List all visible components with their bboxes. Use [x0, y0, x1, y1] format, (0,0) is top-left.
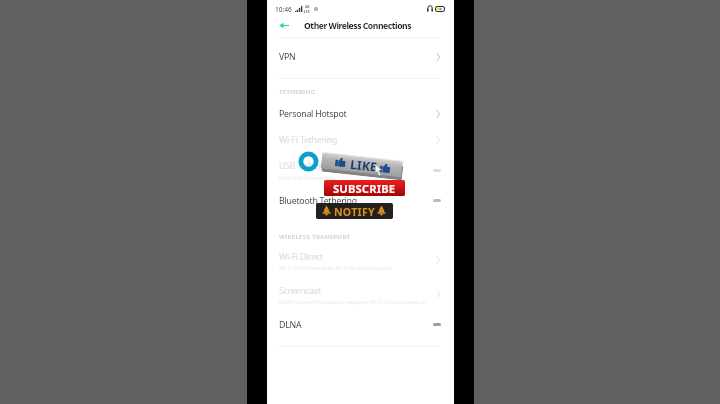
- staticText: Personal Hotspot: [279, 108, 347, 120]
- staticText: WIRELESS TRANSPORT: [279, 233, 351, 241]
- button[interactable]: [267, 127, 454, 153]
- button[interactable]: [267, 189, 454, 215]
- button[interactable]: Like: [321, 152, 403, 177]
- staticText: TETHERING: [279, 88, 316, 96]
- button[interactable]: [267, 40, 454, 73]
- staticText: Screencast: [279, 285, 321, 297]
- button[interactable]: [267, 153, 454, 187]
- staticText: LIKE: [349, 156, 378, 175]
- button[interactable]: [267, 281, 454, 315]
- staticText: VPN: [279, 51, 296, 63]
- button[interactable]: Back: [276, 17, 292, 33]
- staticText: Wi-Fi Direct: [279, 251, 323, 263]
- staticText: NOTIFY: [334, 205, 375, 219]
- staticText: Wi-Fi Direct requires Wi-Fi to be turned…: [279, 264, 393, 272]
- button[interactable]: NOTIFY: [316, 203, 393, 219]
- staticText: Multi-screen interaction requires Wi-Fi …: [279, 298, 427, 306]
- button[interactable]: SUBSCRIBE: [324, 180, 405, 196]
- staticText: SUBSCRIBE: [333, 181, 396, 196]
- staticText: Bluetooth Tethering: [279, 195, 357, 207]
- staticText: 10:46: [275, 5, 292, 14]
- staticText: USB Tethering: [279, 160, 335, 172]
- staticText: 4G: [305, 4, 310, 9]
- button[interactable]: [267, 313, 454, 338]
- staticText: Other Wireless Connections: [304, 20, 412, 32]
- staticText: DLNA: [279, 319, 302, 331]
- staticText: Wi-Fi Tethering: [279, 134, 338, 146]
- button[interactable]: [267, 101, 454, 127]
- staticText: USB Not Connected: [279, 174, 333, 182]
- staticText: LTE: [304, 9, 310, 14]
- button[interactable]: [267, 246, 454, 280]
